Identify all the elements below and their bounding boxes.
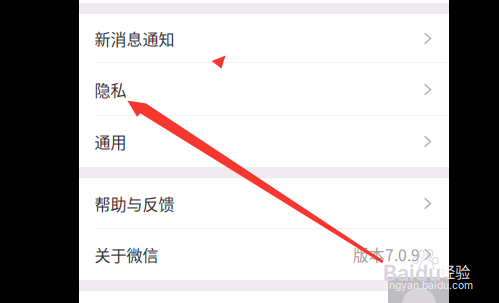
button[interactable]: 帮助与反馈 bbox=[79, 178, 449, 229]
staticText: 经验 bbox=[440, 260, 470, 282]
staticText: jingyan.baidu.com bbox=[383, 279, 473, 292]
button[interactable]: 隐私 bbox=[79, 63, 449, 116]
staticText: 关于微信 bbox=[94, 243, 158, 266]
staticText: 帮助与反馈 bbox=[94, 192, 174, 215]
staticText: Baidu bbox=[383, 260, 441, 286]
staticText: 通用 bbox=[94, 130, 126, 153]
staticText: 隐私 bbox=[94, 78, 126, 101]
staticText: 新消息通知 bbox=[94, 27, 174, 50]
button[interactable]: 关于微信 bbox=[79, 229, 449, 280]
button[interactable]: 通用 bbox=[79, 116, 449, 167]
staticText: 版本7.0.9 bbox=[353, 243, 420, 266]
button[interactable]: 新消息通知 bbox=[79, 14, 449, 63]
